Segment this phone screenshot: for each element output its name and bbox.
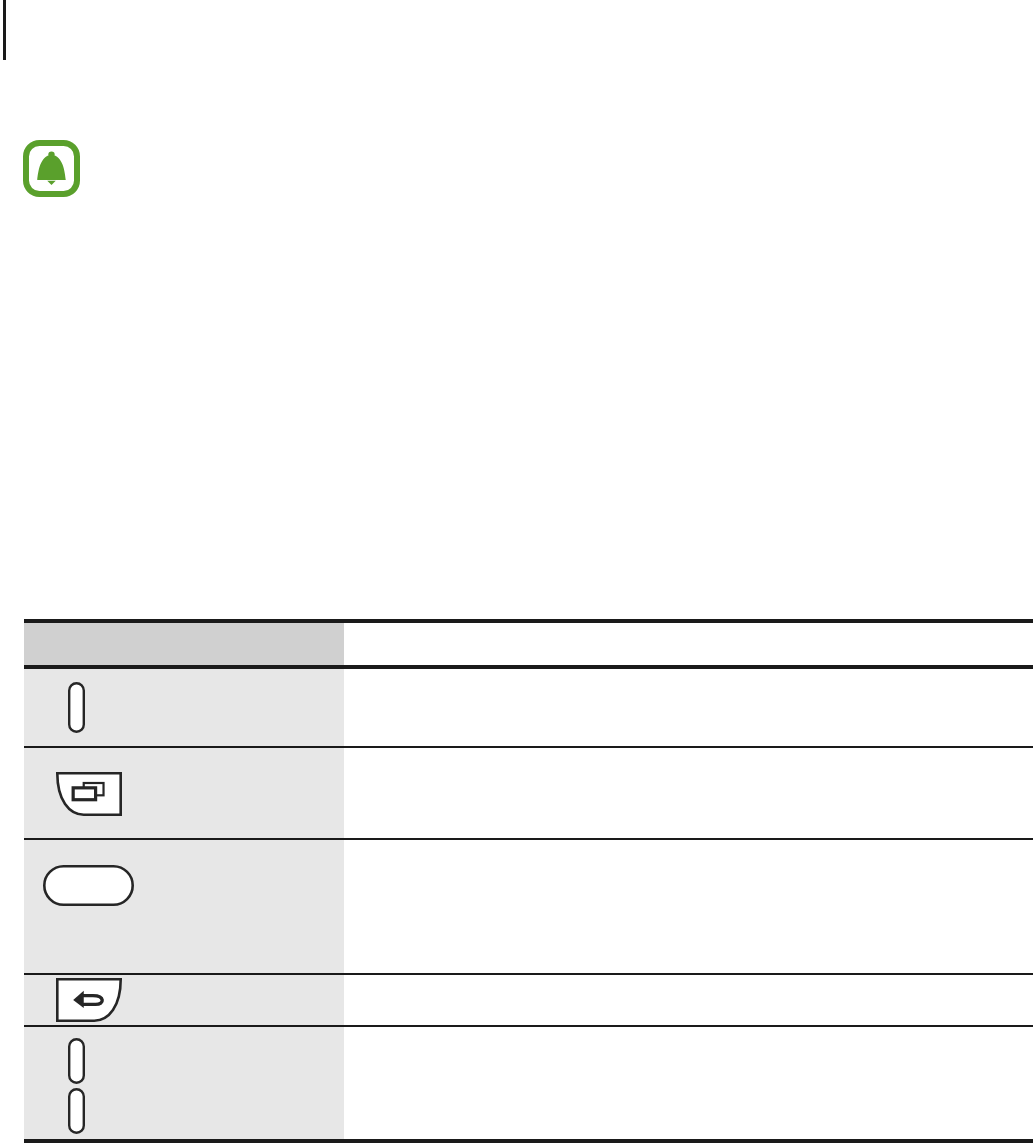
button[interactable]: Recents key	[24, 748, 344, 838]
button[interactable]: Home key	[24, 840, 344, 973]
other: Notification	[23, 140, 80, 197]
button[interactable]: Back key	[24, 975, 344, 1025]
button[interactable]: Volume key	[24, 1027, 344, 1139]
button[interactable]: Power key	[24, 669, 344, 746]
